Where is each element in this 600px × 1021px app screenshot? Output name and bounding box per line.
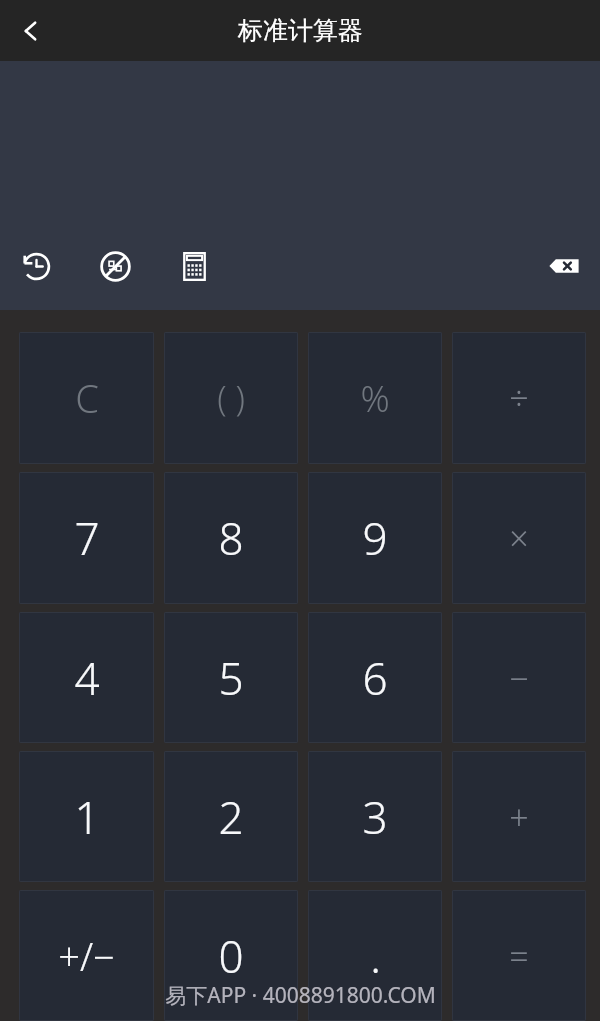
- button[interactable]: +/−: [19, 890, 154, 1021]
- button[interactable]: 6: [308, 612, 442, 743]
- staticText: 5: [218, 648, 244, 708]
- button[interactable]: ×: [452, 472, 586, 604]
- button[interactable]: −: [452, 612, 586, 743]
- staticText: C: [75, 372, 99, 424]
- staticText: ( ): [217, 375, 245, 421]
- button[interactable]: =: [452, 890, 586, 1021]
- button[interactable]: 5: [164, 612, 298, 743]
- button[interactable]: .: [308, 890, 442, 1021]
- staticText: 7: [74, 508, 100, 568]
- button[interactable]: 9: [308, 472, 442, 604]
- staticText: ×: [509, 515, 529, 561]
- staticText: 9: [362, 508, 388, 568]
- button[interactable]: Back: [0, 0, 62, 61]
- staticText: 0: [218, 926, 244, 986]
- button[interactable]: ÷: [452, 332, 586, 464]
- staticText: 易下APP · 4008891800.COM: [165, 981, 436, 1010]
- button[interactable]: +: [452, 751, 586, 882]
- staticText: 4: [74, 648, 100, 708]
- button[interactable]: 2: [164, 751, 298, 882]
- button[interactable]: 0: [164, 890, 298, 1021]
- staticText: +: [509, 794, 529, 840]
- staticText: 2: [218, 787, 244, 847]
- button[interactable]: ( ): [164, 332, 298, 464]
- staticText: 3: [362, 787, 388, 847]
- staticText: 标准计算器: [238, 15, 363, 46]
- staticText: .: [370, 926, 381, 986]
- staticText: %: [360, 374, 390, 423]
- button[interactable]: 3: [308, 751, 442, 882]
- button[interactable]: Calculator mode: [168, 240, 220, 292]
- button[interactable]: C: [19, 332, 154, 464]
- staticText: −: [509, 655, 529, 701]
- button[interactable]: Backspace: [538, 240, 590, 292]
- button[interactable]: 8: [164, 472, 298, 604]
- staticText: 6: [362, 648, 388, 708]
- staticText: 1: [74, 787, 100, 847]
- staticText: +/−: [58, 930, 115, 982]
- button[interactable]: Mute sound: [89, 240, 141, 292]
- button[interactable]: 4: [19, 612, 154, 743]
- button[interactable]: 1: [19, 751, 154, 882]
- staticText: =: [509, 933, 529, 979]
- staticText: ÷: [509, 375, 529, 421]
- button[interactable]: History: [10, 240, 62, 292]
- button[interactable]: 7: [19, 472, 154, 604]
- staticText: 8: [218, 508, 244, 568]
- button[interactable]: %: [308, 332, 442, 464]
